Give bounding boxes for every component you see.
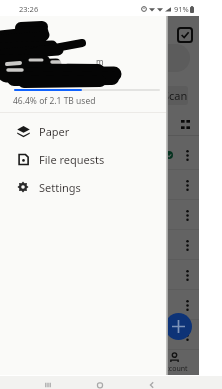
button[interactable]: More options [0,320,199,350]
button[interactable]: Select items [178,28,192,42]
staticText: Account [161,364,188,374]
button[interactable]: Settings [0,173,166,201]
button[interactable]: More options [183,329,192,342]
button[interactable]: Recent apps [43,381,53,389]
button[interactable]: More options [0,290,199,320]
button[interactable]: More options [0,230,199,260]
button[interactable]: More options [183,299,192,312]
staticText: Settings [39,180,81,195]
button[interactable]: m [0,16,166,73]
button[interactable]: File requests [0,145,166,173]
button[interactable]: More options [0,200,199,230]
staticText: Paper [39,124,70,139]
staticText: 46.4% of 2.1 TB used [13,95,96,107]
button[interactable]: More options [183,239,192,252]
button[interactable]: More options [183,209,192,222]
button[interactable]: More options [183,149,192,162]
button[interactable]: More options [0,170,199,200]
button[interactable]: More options [183,269,192,282]
button[interactable]: More options [0,140,199,170]
button[interactable]: More options [0,260,199,290]
button[interactable]: Scan [130,86,188,105]
staticText: 91% [174,4,189,14]
staticText: Scan [163,88,188,103]
button[interactable]: Switch to grid view [181,120,190,129]
button[interactable]: Home [95,381,105,389]
button[interactable]: Paper [0,117,166,145]
staticText: File requests [39,152,105,167]
button[interactable]: Back [147,381,157,389]
button[interactable]: More options [183,179,192,192]
button[interactable]: Account [149,350,199,375]
button[interactable]: Create new [165,313,192,340]
staticText: 23:26 [19,4,39,14]
staticText: m [96,56,104,67]
